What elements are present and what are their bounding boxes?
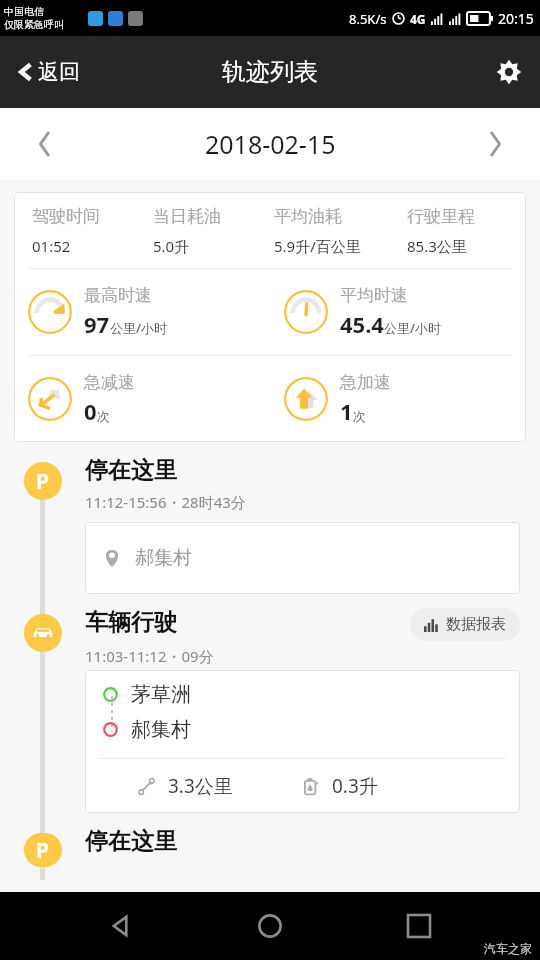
button[interactable]: Previous day xyxy=(0,108,90,180)
staticText: 郝集村 xyxy=(135,546,192,570)
staticText: 急加速 xyxy=(340,372,391,393)
staticText: 45.4 xyxy=(340,309,384,339)
staticText: 郝集村 xyxy=(131,717,191,742)
staticText: 轨迹列表 xyxy=(222,57,318,87)
staticText: 0 xyxy=(84,396,97,426)
button[interactable]: Back xyxy=(93,898,149,954)
staticText: 停在这里 xyxy=(85,827,177,856)
staticText: 茅草洲 xyxy=(131,682,191,707)
staticText: 停在这里 xyxy=(85,456,177,485)
staticText: 4G xyxy=(410,11,426,27)
staticText: 次 xyxy=(353,408,366,424)
button[interactable]: 急减速 xyxy=(14,356,270,442)
button[interactable]: Recent apps xyxy=(391,898,447,954)
staticText: 返回 xyxy=(38,59,80,85)
staticText: 8.5K/s xyxy=(349,10,387,28)
button[interactable]: Next day xyxy=(450,108,540,180)
staticText: 1 xyxy=(340,396,353,426)
staticText: 2018-02-15 xyxy=(205,127,336,161)
staticText: 数据报表 xyxy=(446,615,506,634)
staticText: 85.3公里 xyxy=(407,236,467,256)
button[interactable]: Home xyxy=(242,898,298,954)
staticText: 仅限紧急呼叫 xyxy=(4,18,64,31)
staticText: 公里/小时 xyxy=(384,319,442,337)
staticText: 5.0升 xyxy=(153,236,190,256)
staticText: P xyxy=(36,467,50,496)
button[interactable]: 急加速 xyxy=(270,356,526,442)
staticText: 车辆行驶 xyxy=(85,608,177,637)
staticText: 01:52 xyxy=(32,236,71,256)
staticText: P xyxy=(36,836,50,865)
button[interactable]: 车辆行驶 xyxy=(0,608,540,813)
staticText: 公里/小时 xyxy=(110,319,168,337)
button[interactable]: 最高时速 xyxy=(14,269,270,355)
staticText: 当日耗油 xyxy=(153,206,221,227)
button[interactable]: P xyxy=(0,456,540,594)
button[interactable]: P xyxy=(0,827,540,867)
staticText: 5.9升/百公里 xyxy=(274,236,361,256)
staticText: 97 xyxy=(84,309,110,339)
staticText: 最高时速 xyxy=(84,285,152,306)
staticText: 汽车之家 xyxy=(484,941,532,956)
staticText: 11:12-15:56・28时43分 xyxy=(85,492,246,512)
staticText: 0.3升 xyxy=(332,773,378,799)
staticText: 20:15 xyxy=(498,9,534,28)
staticText: 11:03-11:12・09分 xyxy=(85,646,214,666)
button[interactable]: Settings xyxy=(478,36,540,108)
staticText: 驾驶时间 xyxy=(32,206,100,227)
staticText: 平均油耗 xyxy=(274,206,342,227)
staticText: 次 xyxy=(97,408,110,424)
button[interactable]: 平均时速 xyxy=(270,269,526,355)
staticText: 行驶里程 xyxy=(407,206,475,227)
staticText: 平均时速 xyxy=(340,285,408,306)
button[interactable]: 数据报表 xyxy=(410,608,520,641)
button[interactable]: 返回 xyxy=(0,36,96,108)
staticText: 急减速 xyxy=(84,372,135,393)
staticText: 中国电信 xyxy=(4,5,44,18)
staticText: 3.3公里 xyxy=(168,773,233,799)
